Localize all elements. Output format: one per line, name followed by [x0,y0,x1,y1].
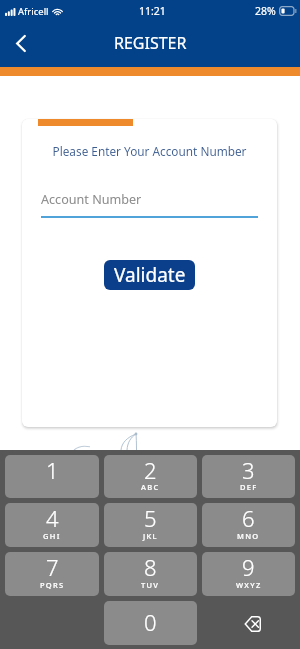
staticText: 11:21 [139,4,166,18]
staticText: 3 [242,455,255,485]
staticText: 4 [46,503,59,533]
button[interactable]: Backspace [202,601,295,645]
staticText: 9 [242,552,255,582]
staticText: MNO [237,531,260,541]
staticText: 7 [46,552,59,582]
staticText: 1 [46,455,59,485]
button[interactable]: 6 [202,503,295,547]
staticText: Account Number [41,191,142,208]
button[interactable]: Back [5,27,37,59]
staticText: 8 [144,552,157,582]
button[interactable]: 4 [5,503,99,547]
staticText: 28% [255,4,276,18]
button[interactable]: 3 [202,455,295,498]
staticText: JKL [143,531,158,541]
button[interactable]: 8 [104,552,197,596]
staticText: 5 [144,503,157,533]
staticText: PQRS [40,580,65,590]
button[interactable]: 7 [5,552,99,596]
staticText: REGISTER [114,32,187,54]
button[interactable]: 1 [5,455,99,498]
staticText: WXYZ [236,580,262,590]
staticText: GHI [43,531,61,541]
staticText: 2 [144,455,157,485]
button[interactable]: 9 [202,552,295,596]
staticText: DEF [240,482,258,492]
staticText: Validate [114,262,186,288]
staticText: ABC [141,482,160,492]
staticText: Please Enter Your Account Number [22,143,277,159]
button[interactable]: Validate [104,260,195,290]
staticText: Africell [18,5,49,18]
staticText: 6 [242,503,255,533]
staticText: 0 [144,607,157,637]
button[interactable]: 0 [104,601,197,645]
staticText: TUV [141,580,160,590]
button[interactable]: 2 [104,455,197,498]
button[interactable]: 5 [104,503,197,547]
